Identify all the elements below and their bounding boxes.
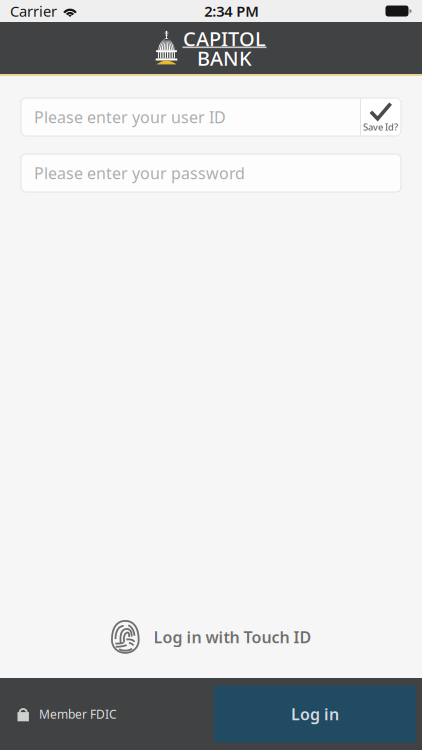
staticText: Log in with Touch ID [153, 626, 311, 648]
staticText: CAPITOL [183, 25, 266, 52]
button[interactable]: Log in with Touch ID [110, 617, 311, 657]
staticText: Member FDIC [39, 706, 117, 722]
button[interactable]: Log in [214, 685, 416, 742]
staticText: Please enter your user ID [34, 106, 226, 128]
staticText: Please enter your password [34, 162, 245, 184]
button[interactable]: Save Id [360, 98, 401, 135]
staticText: 2:34 PM [204, 1, 259, 21]
staticText: BANK [197, 45, 252, 71]
staticText: Save Id? [363, 121, 398, 133]
staticText: Carrier [10, 1, 57, 21]
staticText: Log in [291, 703, 339, 725]
